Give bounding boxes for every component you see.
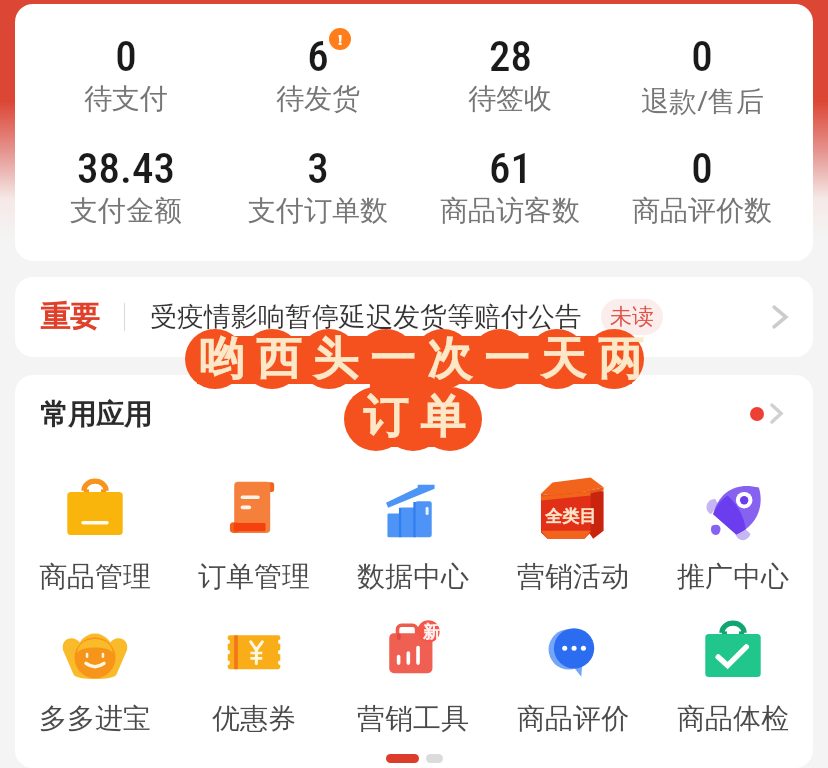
staticText: 待发货 bbox=[276, 81, 360, 116]
button[interactable]: 商品体检 bbox=[653, 617, 813, 736]
staticText: 营销工具 bbox=[357, 701, 469, 736]
staticText: 61 bbox=[489, 143, 532, 193]
button[interactable]: 优惠券 bbox=[174, 617, 333, 736]
button[interactable]: 多多进宝 bbox=[15, 617, 174, 736]
staticText: 退款/售后 bbox=[641, 81, 764, 119]
staticText: 订单 bbox=[357, 389, 471, 446]
staticText: 营销活动 bbox=[517, 559, 629, 594]
button[interactable]: 38.43 bbox=[30, 138, 222, 228]
staticText: 商品访客数 bbox=[440, 193, 580, 228]
staticText: 优惠券 bbox=[212, 701, 296, 736]
staticText: 订单管理 bbox=[198, 559, 310, 594]
button[interactable]: 重要 bbox=[15, 277, 813, 357]
button[interactable]: 订单管理 bbox=[174, 475, 333, 594]
staticText: 受疫情影响暂停延迟发货等赔付公告 bbox=[150, 300, 582, 334]
button[interactable]: 0 bbox=[606, 26, 798, 119]
staticText: 支付金额 bbox=[70, 193, 182, 228]
button[interactable]: 商品评价 bbox=[493, 617, 653, 736]
button[interactable]: 商品管理 bbox=[15, 475, 174, 594]
staticText: 待签收 bbox=[468, 81, 552, 116]
staticText: 数据中心 bbox=[357, 559, 469, 594]
button[interactable]: 新 bbox=[333, 617, 493, 736]
button[interactable]: 0 bbox=[30, 26, 222, 116]
staticText: 未读 bbox=[610, 303, 654, 331]
button[interactable]: 28 bbox=[414, 26, 606, 116]
button[interactable]: 61 bbox=[414, 138, 606, 228]
staticText: 0 bbox=[691, 143, 713, 193]
staticText: 重要 bbox=[40, 298, 100, 336]
staticText: 全类目 bbox=[545, 506, 596, 527]
staticText: 商品管理 bbox=[39, 559, 151, 594]
staticText: 常用应用 bbox=[40, 397, 152, 429]
button[interactable]: 3 bbox=[222, 138, 414, 228]
button[interactable]: 更多应用 bbox=[750, 400, 782, 427]
staticText: 支付订单数 bbox=[248, 193, 388, 228]
staticText: 38.43 bbox=[77, 143, 175, 193]
staticText: 哟西头一次一天两 bbox=[193, 331, 649, 388]
staticText: 多多进宝 bbox=[39, 701, 151, 736]
button[interactable]: 6 bbox=[222, 26, 414, 116]
staticText: 0 bbox=[691, 31, 713, 81]
staticText: 商品评价 bbox=[517, 701, 629, 736]
staticText: 28 bbox=[489, 31, 532, 81]
staticText: ! bbox=[338, 29, 343, 49]
staticText: 待支付 bbox=[84, 81, 168, 116]
staticText: 0 bbox=[115, 31, 137, 81]
staticText: 推广中心 bbox=[677, 559, 789, 594]
staticText: 新 bbox=[423, 622, 440, 643]
button[interactable]: 0 bbox=[606, 138, 798, 228]
staticText: 商品体检 bbox=[677, 701, 789, 736]
button[interactable]: 全类目 bbox=[493, 475, 653, 594]
button[interactable]: 数据中心 bbox=[333, 475, 493, 594]
staticText: 3 bbox=[307, 143, 329, 193]
staticText: 6 bbox=[307, 31, 329, 81]
button[interactable]: 推广中心 bbox=[653, 475, 813, 594]
staticText: 商品评价数 bbox=[632, 193, 772, 228]
